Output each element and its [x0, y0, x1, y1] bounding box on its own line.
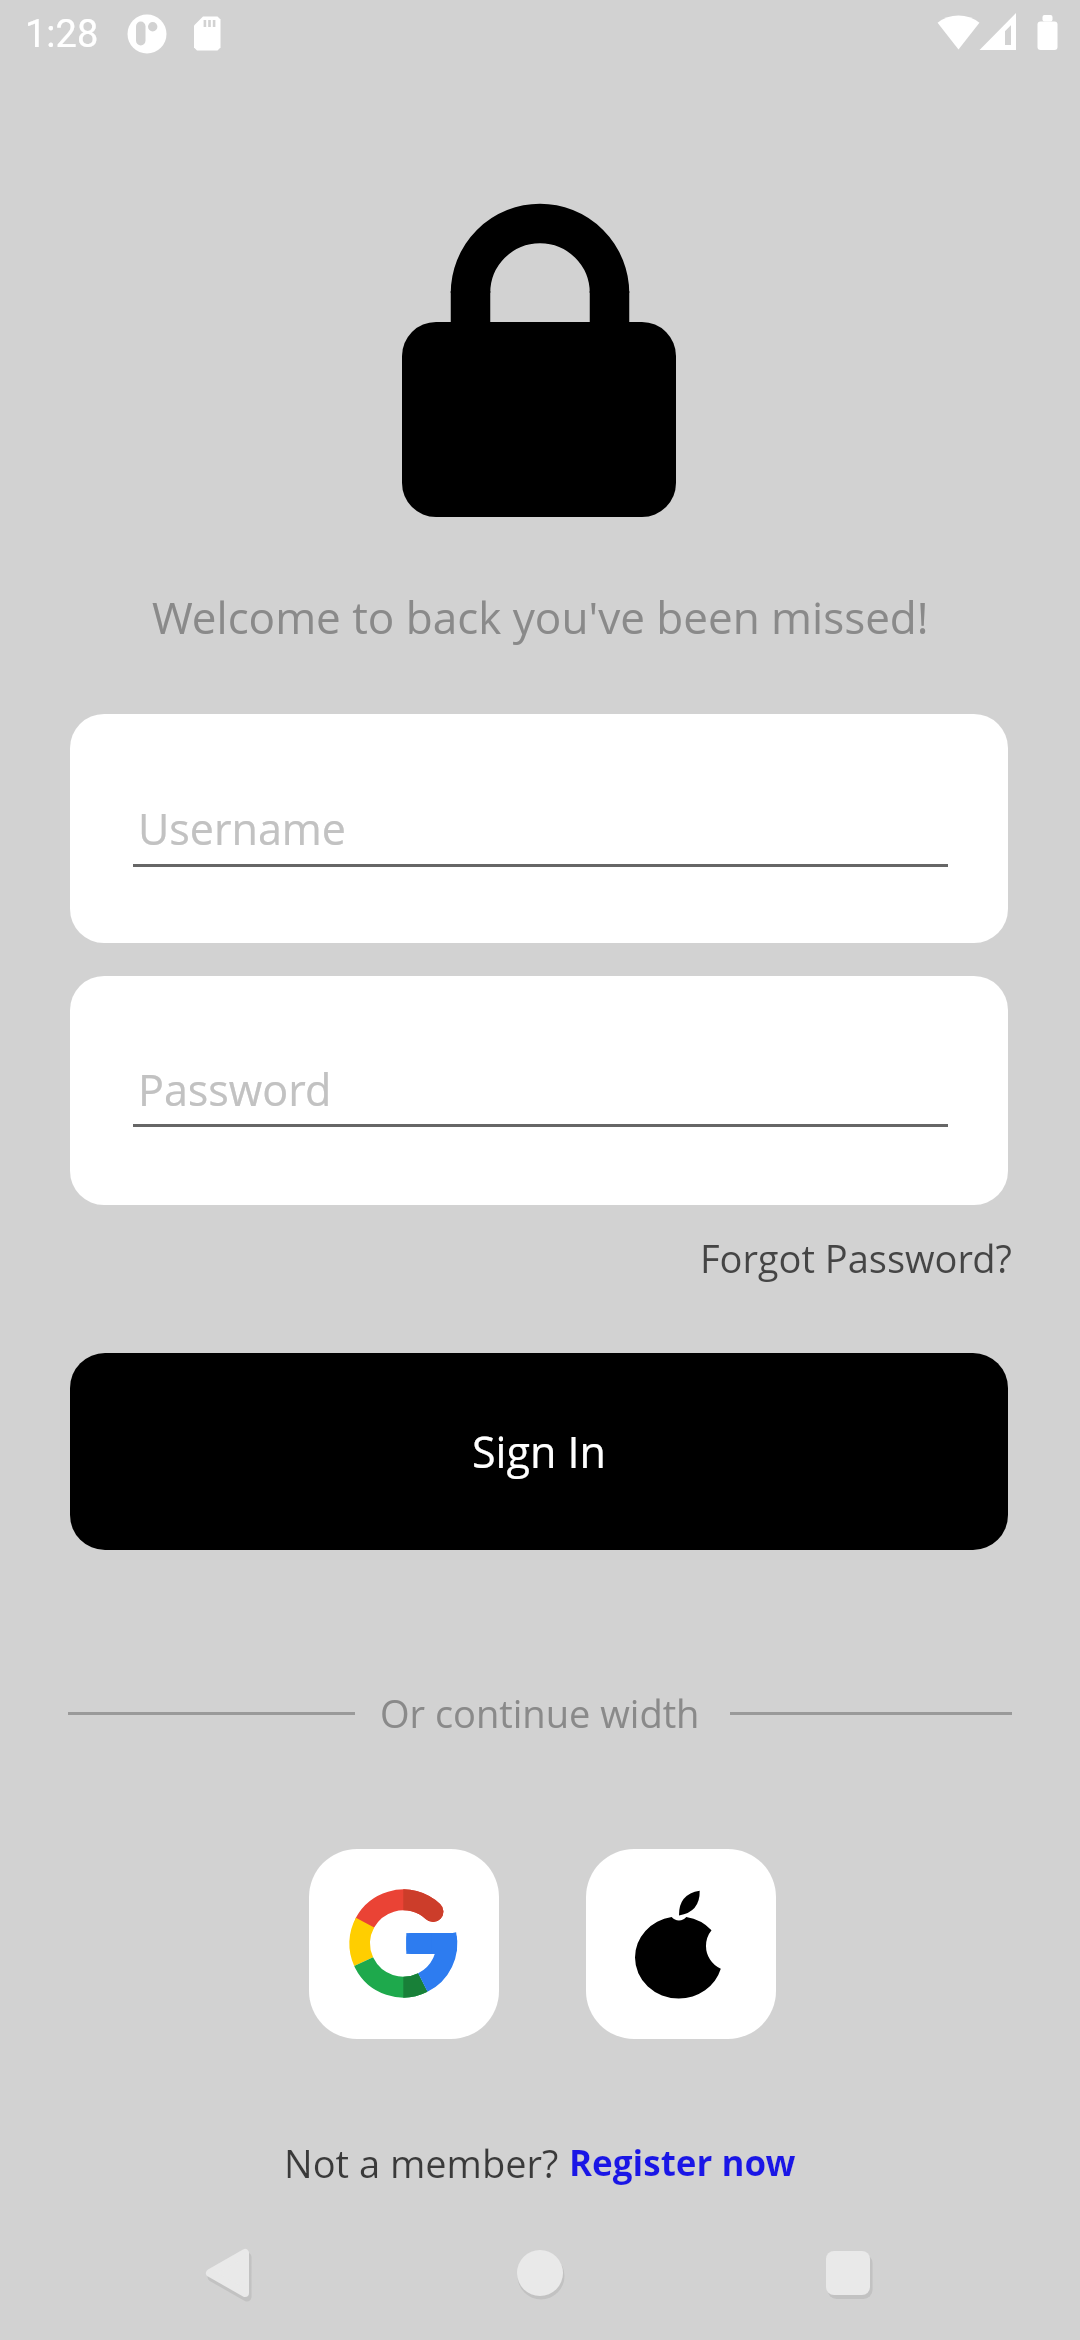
staticText: Not a member? [284, 2137, 569, 2189]
staticText: Username [138, 799, 346, 858]
staticText: Password [138, 1060, 332, 1119]
button[interactable]: Register now [569, 2139, 796, 2187]
staticText: Welcome to back you've been missed! [152, 587, 929, 647]
button[interactable] [586, 1849, 776, 2039]
button[interactable] [309, 1849, 499, 2039]
staticText: Or continue width [380, 1687, 700, 1739]
staticText: Sign In [472, 1422, 606, 1481]
button[interactable]: Forgot Password? [700, 1232, 1012, 1284]
staticText: Register now [569, 2139, 796, 2187]
button[interactable]: Username [70, 714, 1008, 943]
button[interactable]: Sign In [70, 1353, 1008, 1550]
staticText: Forgot Password? [700, 1232, 1012, 1284]
button[interactable]: Password [70, 976, 1008, 1205]
staticText: 1:28 [25, 12, 99, 57]
